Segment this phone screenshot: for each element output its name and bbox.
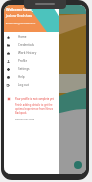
button[interactable]: Add — [74, 161, 82, 169]
staticText: Welcome back, — [6, 7, 33, 12]
button[interactable]: Home — [4, 33, 59, 41]
staticText: Finish adding details to get the optimal… — [15, 103, 57, 115]
staticText: Your profile is not complete yet — [15, 97, 54, 101]
staticText: Settings — [18, 67, 30, 71]
staticText: Help — [18, 75, 25, 79]
staticText: Log out — [18, 83, 29, 87]
staticText: Dismiss this note — [15, 117, 35, 120]
button[interactable]: Credentials — [4, 41, 59, 49]
button[interactable]: Help — [4, 73, 59, 81]
button[interactable]: Log out — [4, 81, 59, 89]
button[interactable]: Work History — [4, 49, 59, 57]
staticText: Profile — [18, 59, 28, 63]
button[interactable]: Settings — [4, 65, 59, 73]
button[interactable]: Profile — [4, 57, 59, 65]
staticText: jbradshaw@stockpile.com — [6, 21, 36, 24]
staticText: Credentials — [18, 43, 34, 47]
staticText: Jaskow Bradshaw — [6, 14, 32, 18]
staticText: Home — [18, 35, 27, 39]
staticText: Work History — [18, 51, 37, 55]
